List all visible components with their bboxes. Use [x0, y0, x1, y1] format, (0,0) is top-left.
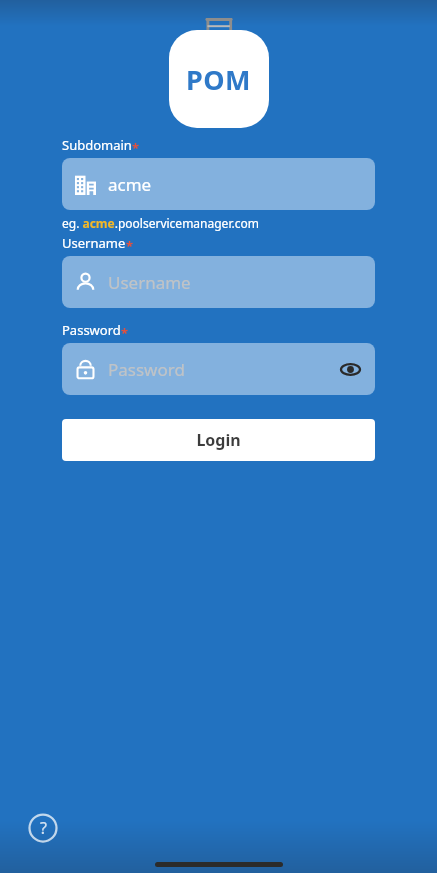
staticText: Password — [62, 321, 121, 339]
staticText: Username — [62, 234, 126, 252]
staticText: * — [132, 139, 140, 157]
staticText: Password — [108, 358, 185, 381]
staticText: * — [126, 237, 134, 255]
staticText: Username — [108, 271, 191, 294]
button[interactable]: Login — [62, 419, 375, 461]
staticText: Login — [196, 429, 241, 451]
staticText: eg. acme.poolservicemanager.com — [62, 215, 259, 231]
button[interactable]: acme — [62, 158, 375, 210]
button[interactable]: Help — [22, 807, 64, 849]
staticText: * — [121, 324, 129, 342]
button[interactable]: Username — [62, 256, 375, 308]
staticText: acme — [108, 173, 152, 196]
staticText: Subdomain — [62, 136, 132, 154]
button[interactable]: Password — [62, 343, 375, 395]
staticText: POM — [186, 61, 252, 98]
staticText: ? — [40, 817, 47, 839]
button[interactable]: Show password — [337, 356, 363, 382]
